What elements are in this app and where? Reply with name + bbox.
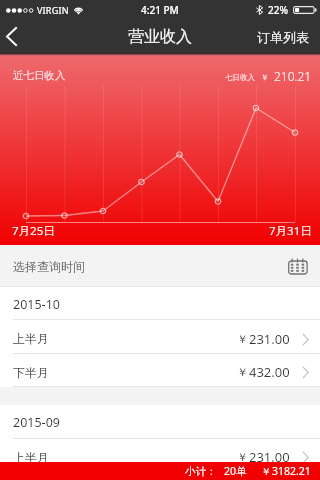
staticText: VIRGIN <box>37 4 69 16</box>
staticText: ￥ <box>237 332 248 346</box>
button[interactable]: 小计： <box>0 462 320 480</box>
staticText: ￥ <box>261 465 271 478</box>
staticText: 近七日收入 <box>13 69 66 82</box>
staticText: 选择查询时间 <box>13 259 85 274</box>
staticText: 小计： <box>185 465 217 478</box>
staticText: 231.00 <box>249 448 290 466</box>
staticText: 七日收入 <box>225 73 255 82</box>
staticText: 下半月 <box>13 365 49 380</box>
staticText: ￥ <box>237 365 248 379</box>
staticText: 营业收入 <box>128 27 192 47</box>
staticText: ￥ <box>237 450 248 464</box>
staticText: 432.00 <box>249 363 290 381</box>
staticText: 2015-10 <box>13 296 60 313</box>
staticText: 7月25日 <box>12 223 55 239</box>
staticText: 上半月 <box>13 450 49 465</box>
button[interactable]: 下半月 <box>0 354 320 387</box>
staticText: 7月31日 <box>269 223 312 239</box>
staticText: 订单列表 <box>257 29 309 45</box>
button[interactable]: Pick date range <box>282 251 312 281</box>
staticText: 2015-09 <box>13 414 60 431</box>
button[interactable]: 上半月 <box>0 320 320 354</box>
staticText: 20单 <box>224 464 247 478</box>
staticText: 上半月 <box>13 331 49 346</box>
button[interactable]: 订单列表 <box>246 20 320 53</box>
button[interactable]: 上半月 <box>0 439 320 472</box>
staticText: ￥ <box>261 73 269 82</box>
staticText: 4:21 PM <box>141 3 179 17</box>
button[interactable]: Back <box>0 20 34 53</box>
staticText: 231.00 <box>249 330 290 348</box>
staticText: 3182.21 <box>272 464 311 478</box>
staticText: 22% <box>268 3 288 17</box>
staticText: 210.21 <box>274 68 312 84</box>
